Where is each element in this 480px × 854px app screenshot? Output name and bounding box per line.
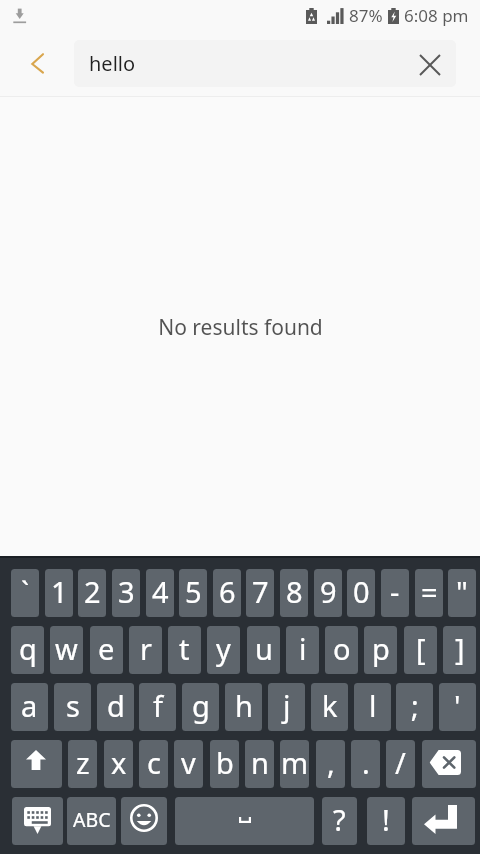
staticText: ABC [73, 806, 111, 833]
staticText: 0 [353, 572, 370, 611]
staticText: a [21, 686, 38, 725]
button[interactable]: . [351, 740, 380, 788]
button[interactable]: a [11, 683, 48, 731]
button[interactable]: Emoji [121, 797, 167, 845]
staticText: l [369, 686, 377, 725]
button[interactable]: t [168, 626, 201, 674]
staticText: 2 [84, 572, 101, 611]
button[interactable]: 9 [314, 569, 342, 617]
button[interactable]: ] [443, 626, 476, 674]
staticText: k [322, 686, 338, 725]
staticText: z [76, 743, 90, 782]
button[interactable]: 1 [45, 569, 73, 617]
staticText: 4 [152, 572, 169, 611]
button[interactable]: b [210, 740, 239, 788]
staticText: ] [455, 629, 465, 668]
staticText: 3 [118, 572, 135, 611]
button[interactable]: ` [11, 569, 39, 617]
staticText: w [55, 629, 78, 668]
button[interactable]: Hide keyboard [12, 797, 63, 845]
staticText: 7 [252, 572, 269, 611]
button[interactable]: ' [439, 683, 476, 731]
staticText: d [107, 686, 125, 725]
button[interactable]: 0 [347, 569, 375, 617]
button[interactable]: 3 [112, 569, 140, 617]
button[interactable]: Shift [11, 740, 62, 788]
button[interactable]: 5 [179, 569, 207, 617]
staticText: y [216, 629, 231, 668]
staticText: n [251, 743, 269, 782]
staticText: . [362, 743, 370, 782]
button[interactable]: Back [0, 30, 73, 97]
staticText: , [327, 743, 335, 782]
button[interactable]: 8 [280, 569, 308, 617]
staticText: r [140, 629, 152, 668]
staticText: = [421, 572, 438, 611]
staticText: 87% [349, 4, 383, 27]
staticText: 5 [185, 572, 202, 611]
staticText: p [372, 629, 390, 668]
button[interactable]: y [207, 626, 240, 674]
button[interactable]: x [104, 740, 133, 788]
button[interactable]: f [139, 683, 176, 731]
button[interactable]: Backspace [422, 740, 476, 788]
button[interactable]: o [325, 626, 358, 674]
button[interactable]: d [97, 683, 134, 731]
staticText: j [283, 686, 291, 725]
button[interactable]: / [386, 740, 415, 788]
button[interactable]: , [316, 740, 345, 788]
button[interactable]: r [129, 626, 162, 674]
button[interactable]: k [311, 683, 348, 731]
button[interactable]: " [448, 569, 476, 617]
button[interactable]: ; [396, 683, 433, 731]
button[interactable]: s [54, 683, 91, 731]
staticText: h [235, 686, 253, 725]
button[interactable]: = [415, 569, 443, 617]
staticText: x [111, 743, 127, 782]
button[interactable]: [ [404, 626, 437, 674]
button[interactable]: z [68, 740, 97, 788]
button[interactable]: i [286, 626, 319, 674]
button[interactable]: c [139, 740, 168, 788]
staticText: q [19, 629, 37, 668]
staticText: 9 [320, 572, 337, 611]
button[interactable]: l [354, 683, 391, 731]
button[interactable]: 7 [246, 569, 274, 617]
staticText: o [333, 629, 351, 668]
button[interactable]: q [11, 626, 44, 674]
staticText: / [395, 743, 406, 782]
button[interactable]: 6 [213, 569, 241, 617]
button[interactable]: ! [367, 797, 405, 845]
button[interactable]: ? [322, 797, 357, 845]
staticText: 6 [219, 572, 236, 611]
button[interactable]: h [225, 683, 262, 731]
button[interactable]: n [245, 740, 274, 788]
staticText: ' [454, 686, 461, 725]
button[interactable]: e [90, 626, 123, 674]
staticText: ! [382, 800, 390, 839]
staticText: ` [21, 572, 30, 611]
button[interactable]: Enter [412, 797, 475, 845]
button[interactable]: g [182, 683, 219, 731]
button[interactable]: 2 [78, 569, 106, 617]
staticText: 8 [286, 572, 303, 611]
staticText: c [147, 743, 161, 782]
button[interactable]: 4 [146, 569, 174, 617]
button[interactable]: Space [175, 797, 314, 845]
staticText: 6:08 pm [404, 4, 469, 27]
staticText: m [281, 743, 309, 782]
button[interactable]: - [381, 569, 409, 617]
staticText: " [456, 572, 468, 611]
button[interactable]: w [50, 626, 83, 674]
button[interactable]: p [364, 626, 397, 674]
button[interactable]: j [268, 683, 305, 731]
button[interactable]: m [280, 740, 309, 788]
staticText: t [179, 629, 190, 668]
staticText: No results found [158, 313, 323, 342]
button[interactable]: hello [74, 40, 456, 87]
staticText: i [299, 629, 307, 668]
button[interactable]: ABC [67, 797, 116, 845]
button[interactable]: Clear [404, 40, 456, 87]
button[interactable]: v [174, 740, 203, 788]
button[interactable]: u [247, 626, 280, 674]
